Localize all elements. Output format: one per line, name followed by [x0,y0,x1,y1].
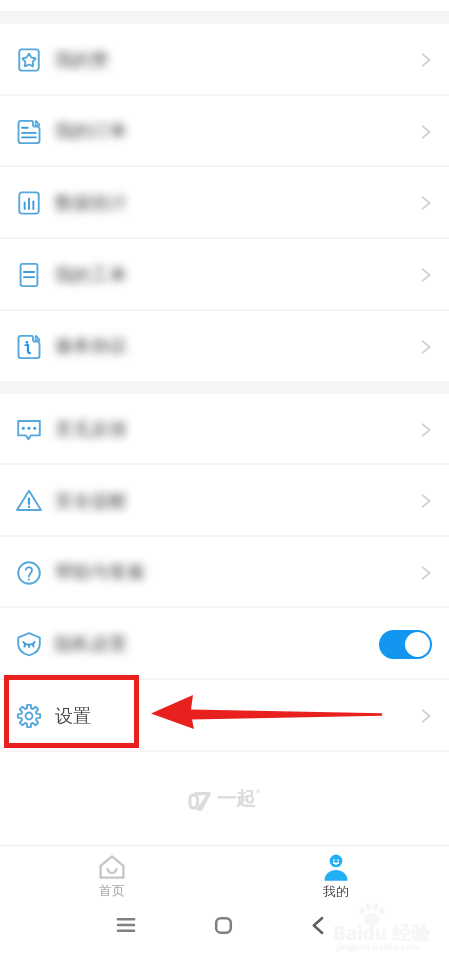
staticText: 我的 [323,883,349,899]
other: Recent apps [118,918,134,932]
other: Open [420,492,432,510]
staticText: 设置 [55,705,91,728]
other: Open [420,194,432,212]
button[interactable]: 意见反馈 [0,394,449,465]
button[interactable]: Back [292,908,344,942]
button[interactable]: Recent apps [100,908,152,942]
staticText: 隐私设置 [55,633,127,656]
other: Open [420,707,432,725]
staticText: 数据统计 [55,192,127,215]
button[interactable]: 服务协议 [0,311,449,382]
staticText: 首页 [99,882,125,898]
button[interactable]: 我的工单 [0,239,449,311]
staticText: 我的工单 [55,264,127,287]
other: Open [420,564,432,582]
button[interactable]: 我的订单 [0,96,449,167]
other: Open [420,266,432,284]
button[interactable]: 安全提醒 [0,465,449,537]
button[interactable]: Home [197,908,249,942]
other: Back [313,917,323,934]
staticText: 意见反馈 [55,418,127,441]
other: Open [420,421,432,439]
other: Open [420,51,432,69]
staticText: 帮助与客服 [55,561,145,584]
staticText: 我的订单 [55,120,127,143]
staticText: Baidu 经验 [333,920,430,946]
button[interactable]: 我的 [264,845,408,908]
button[interactable]: 隐私设置 [0,608,449,680]
button[interactable]: 帮助与客服 [0,537,449,608]
other: Open [420,338,432,356]
button[interactable]: Switch on [379,630,432,659]
staticText: ® [256,789,261,796]
staticText: jingyan.baidu.com [337,940,420,952]
staticText: 我的赞 [55,49,109,72]
staticText: 安全提醒 [55,490,127,513]
button[interactable]: 设置 [0,680,449,752]
button[interactable]: 数据统计 [0,167,449,239]
staticText: 一起 [217,787,255,811]
staticText: 服务协议 [55,335,127,358]
button[interactable]: 首页 [40,845,184,908]
other: Open [420,123,432,141]
other: Home [215,917,232,934]
button[interactable]: 我的赞 [0,24,449,96]
